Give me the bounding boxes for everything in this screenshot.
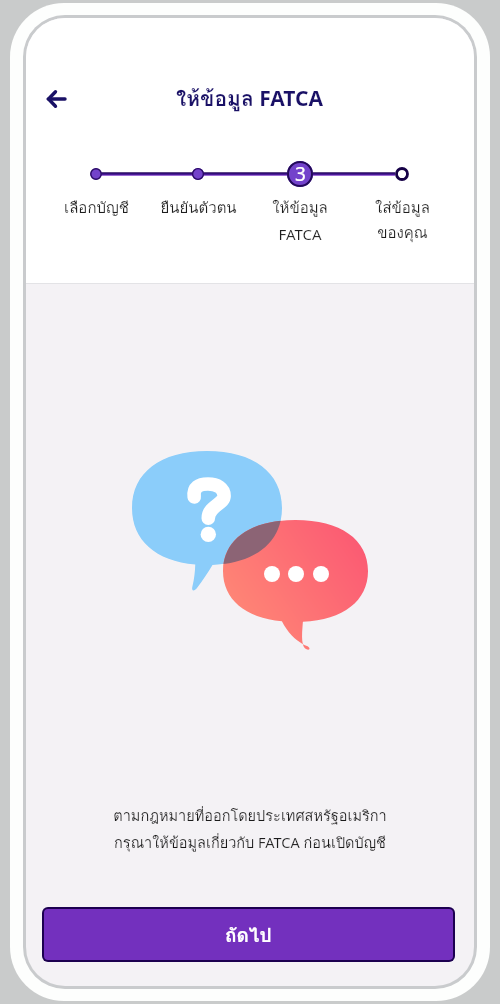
staticText: ถัดไป: [225, 920, 272, 950]
staticText: เลือกบัญชี: [64, 196, 129, 220]
staticText: ยืนยันตัวตน: [160, 196, 237, 220]
staticText: ใส่ข้อมูล ของคุณ: [375, 196, 430, 245]
staticText: 3: [295, 161, 306, 187]
staticText: ตามกฎหมายที่ออกโดยประเทศสหรัฐอเมริกา กรุ…: [113, 804, 387, 855]
staticText: ให้ข้อมูล FATCA: [272, 196, 328, 244]
button[interactable]: Back: [32, 75, 80, 123]
button[interactable]: ถัดไป: [44, 909, 453, 960]
staticText: ให้ข้อมูล FATCA: [176, 82, 324, 115]
